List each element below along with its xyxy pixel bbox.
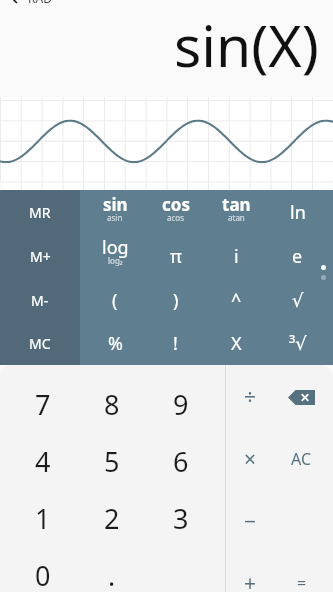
staticText: M- [31,291,49,310]
button[interactable]: − [225,490,276,552]
staticText: log [102,235,129,260]
staticText: × [244,445,257,474]
staticText: asin [107,212,123,223]
button[interactable]: 5 [77,433,146,490]
staticText: ³√ [289,331,307,356]
button[interactable]: 7 [8,376,77,433]
staticText: ÷ [244,383,257,412]
button[interactable]: cos [145,190,206,234]
staticText: − [244,507,257,536]
staticText: 1 [35,500,51,537]
button[interactable]: 8 [77,376,146,433]
staticText: . [108,557,116,592]
staticText: MR [29,203,51,222]
staticText: e [292,244,303,269]
staticText: i [234,244,239,269]
staticText: sin [103,193,128,216]
staticText: √ [292,290,304,311]
staticText: 6 [173,443,189,480]
staticText: X [231,331,242,356]
button[interactable]: ) [145,278,206,322]
button[interactable]: = [276,552,327,592]
button[interactable]: . [77,547,146,592]
staticText: % [108,331,123,356]
other: Backspace [288,390,315,405]
staticText: AC [291,448,312,470]
button[interactable]: i [206,234,267,278]
button[interactable]: ³√ [267,322,328,365]
staticText: 2 [104,500,120,537]
staticText: 8 [104,386,120,423]
button[interactable]: M- [0,278,80,322]
button[interactable]: × [225,428,276,490]
button[interactable]: 4 [8,433,77,490]
staticText: ) [173,288,179,313]
staticText: ln [290,200,306,225]
staticText: RAD [28,0,52,6]
button[interactable]: ^ [206,278,267,322]
staticText: MC [29,334,51,353]
staticText: 4 [35,443,51,480]
staticText: = [297,572,307,592]
button[interactable]: tan [206,190,267,234]
button[interactable]: log [85,234,145,278]
button[interactable]: 1 [8,490,77,547]
button[interactable]: ln [267,190,328,234]
button[interactable]: ( [85,278,145,322]
staticText: cos [162,193,190,216]
staticText: ( [112,288,118,313]
staticText: atan [228,212,245,223]
button[interactable]: π [145,234,206,278]
staticText: ! [173,331,178,356]
button[interactable]: MR [0,190,80,234]
button[interactable]: Backspace [276,366,327,428]
staticText: 0 [35,557,51,592]
staticText: tan [222,193,251,216]
button[interactable]: AC [276,428,327,490]
button[interactable]: MC [0,322,80,365]
button[interactable]: M+ [0,234,80,278]
button[interactable]: 3 [146,490,215,547]
staticText: 3 [173,500,189,537]
staticText: sin(X) [174,6,319,84]
staticText: M+ [30,247,51,266]
button[interactable]: e [267,234,328,278]
button[interactable]: 0 [8,547,77,592]
button[interactable]: Back [4,0,52,7]
staticText: + [244,569,257,592]
staticText: ^ [231,288,242,313]
button[interactable]: √ [267,278,328,322]
staticText: 7 [35,386,51,423]
other: Back [4,0,22,7]
button[interactable]: ÷ [225,366,276,428]
staticText: acos [167,212,184,223]
staticText: π [170,244,182,269]
button[interactable]: sin [85,190,145,234]
button[interactable]: 2 [77,490,146,547]
staticText: log₂ [108,255,123,266]
button[interactable]: % [85,322,145,365]
button[interactable]: 9 [146,376,215,433]
button[interactable]: ! [145,322,206,365]
staticText: 9 [173,386,189,423]
button[interactable]: 6 [146,433,215,490]
button[interactable]: + [225,552,276,592]
button[interactable]: X [206,322,267,365]
staticText: 5 [104,443,120,480]
